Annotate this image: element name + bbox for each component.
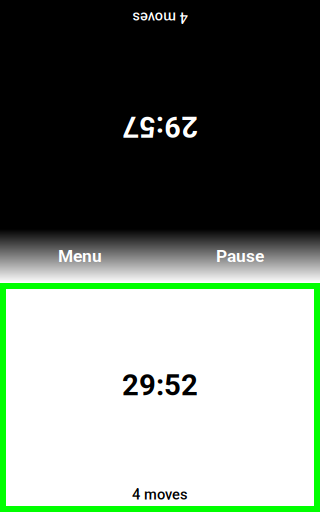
staticText: 4 moves bbox=[132, 486, 188, 503]
button[interactable]: 29:57 bbox=[0, 0, 320, 229]
staticText: Pause bbox=[216, 246, 264, 266]
staticText: 29:57 bbox=[122, 85, 198, 119]
button[interactable]: 29:52 bbox=[0, 283, 320, 512]
button[interactable]: Pause bbox=[160, 229, 320, 283]
staticText: Menu bbox=[58, 246, 102, 266]
staticText: 29:52 bbox=[122, 368, 198, 402]
button[interactable]: Menu bbox=[0, 229, 160, 283]
